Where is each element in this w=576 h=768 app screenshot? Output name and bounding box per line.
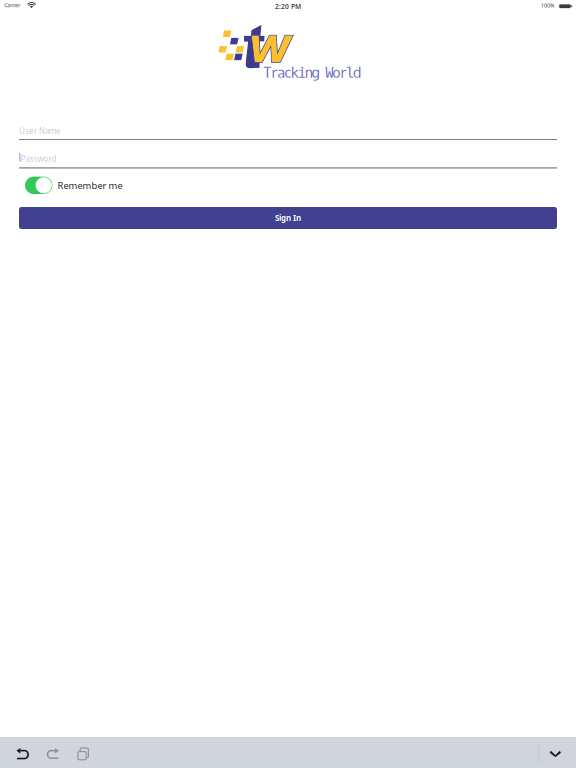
button[interactable]: User Name <box>19 123 557 145</box>
button[interactable]: Remember me <box>22 174 125 197</box>
button[interactable]: Redo <box>44 737 74 768</box>
button[interactable]: Password <box>19 152 557 174</box>
staticText: Tracking World <box>263 63 362 82</box>
button[interactable]: Undo <box>14 737 44 768</box>
staticText: Carrier <box>4 2 20 9</box>
staticText: Sign In <box>275 213 301 223</box>
button[interactable]: Sign In <box>19 207 557 229</box>
button[interactable]: Paste <box>74 737 104 768</box>
staticText: Password <box>21 153 57 164</box>
staticText: Remember me <box>57 179 122 191</box>
button[interactable]: Hide keyboard <box>540 737 570 768</box>
staticText: 100% <box>541 2 554 9</box>
staticText: 2:20 PM <box>275 2 301 11</box>
staticText: User Name <box>19 125 61 136</box>
